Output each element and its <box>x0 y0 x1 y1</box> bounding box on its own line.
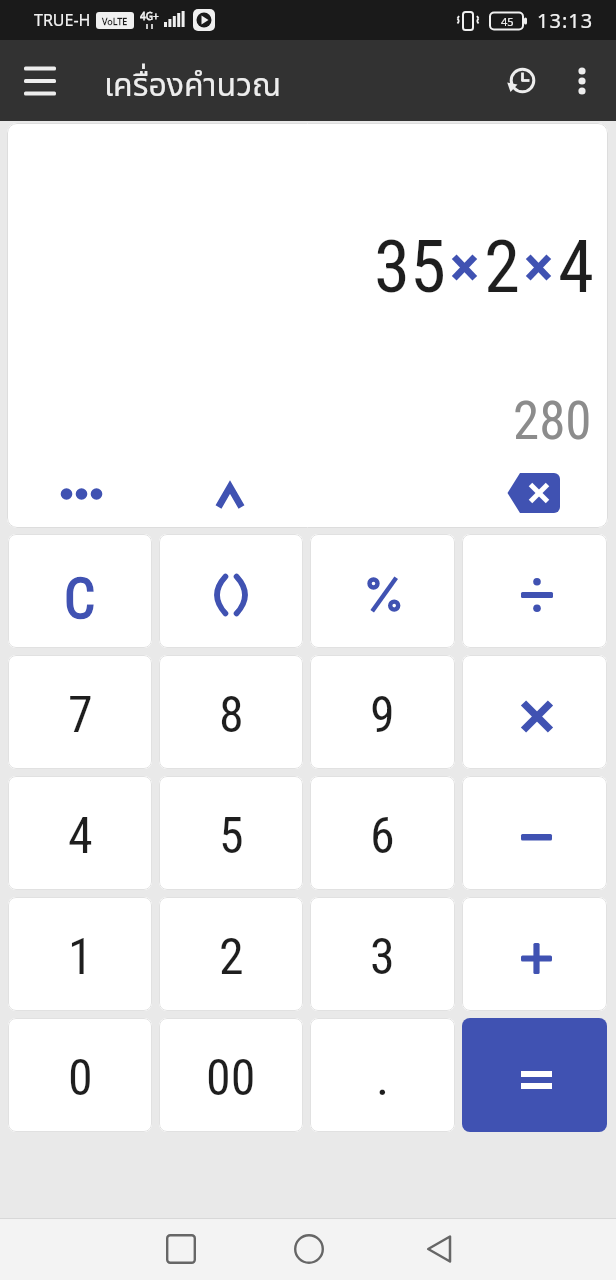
button[interactable] <box>394 1224 484 1274</box>
button[interactable] <box>54 478 108 510</box>
staticText: 4 <box>68 807 93 866</box>
staticText: 3 <box>370 928 395 987</box>
staticText: 35 <box>374 224 447 310</box>
staticText: C <box>64 567 96 631</box>
button[interactable]: . <box>310 1018 455 1132</box>
button[interactable] <box>462 655 607 769</box>
button[interactable] <box>462 776 607 890</box>
staticText: . <box>376 1049 390 1108</box>
button[interactable] <box>264 1224 354 1274</box>
staticText: 2 <box>484 224 521 310</box>
staticText: 13:13 <box>537 7 594 34</box>
button[interactable]: 6 <box>310 776 455 890</box>
button[interactable]: 9 <box>310 655 455 769</box>
staticText: 00 <box>206 1049 256 1108</box>
staticText: VoLTE <box>102 15 128 27</box>
button[interactable] <box>310 534 455 648</box>
button[interactable] <box>462 534 607 648</box>
staticText: 5 <box>219 807 244 866</box>
staticText: 9 <box>370 686 395 745</box>
button[interactable]: 7 <box>8 655 152 769</box>
staticText: 0 <box>68 1049 93 1108</box>
button[interactable] <box>136 1224 226 1274</box>
button[interactable]: 0 <box>8 1018 152 1132</box>
button[interactable] <box>159 534 303 648</box>
button[interactable]: 3 <box>310 897 455 1011</box>
button[interactable] <box>16 57 64 105</box>
button[interactable] <box>210 476 250 518</box>
staticText: 4 <box>558 224 595 310</box>
button[interactable] <box>560 59 604 103</box>
button[interactable]: C <box>8 534 152 648</box>
staticText: 7 <box>68 686 93 745</box>
staticText: TRUE-H <box>34 9 91 31</box>
staticText: 6 <box>370 807 395 866</box>
button[interactable] <box>498 57 546 105</box>
staticText: 280 <box>513 390 592 452</box>
button[interactable]: 1 <box>8 897 152 1011</box>
button[interactable]: 4 <box>8 776 152 890</box>
button[interactable] <box>462 1018 607 1132</box>
staticText: 45 <box>501 14 514 29</box>
button[interactable]: 00 <box>159 1018 303 1132</box>
button[interactable]: 5 <box>159 776 303 890</box>
staticText: เครื่องคำนวณ <box>104 62 282 110</box>
button[interactable] <box>501 467 567 519</box>
staticText: 8 <box>219 686 244 745</box>
staticText: 1 <box>68 928 93 987</box>
button[interactable] <box>462 897 607 1011</box>
staticText: 2 <box>219 928 244 987</box>
button[interactable]: 8 <box>159 655 303 769</box>
button[interactable]: 2 <box>159 897 303 1011</box>
staticText: 4G+ <box>140 9 159 23</box>
